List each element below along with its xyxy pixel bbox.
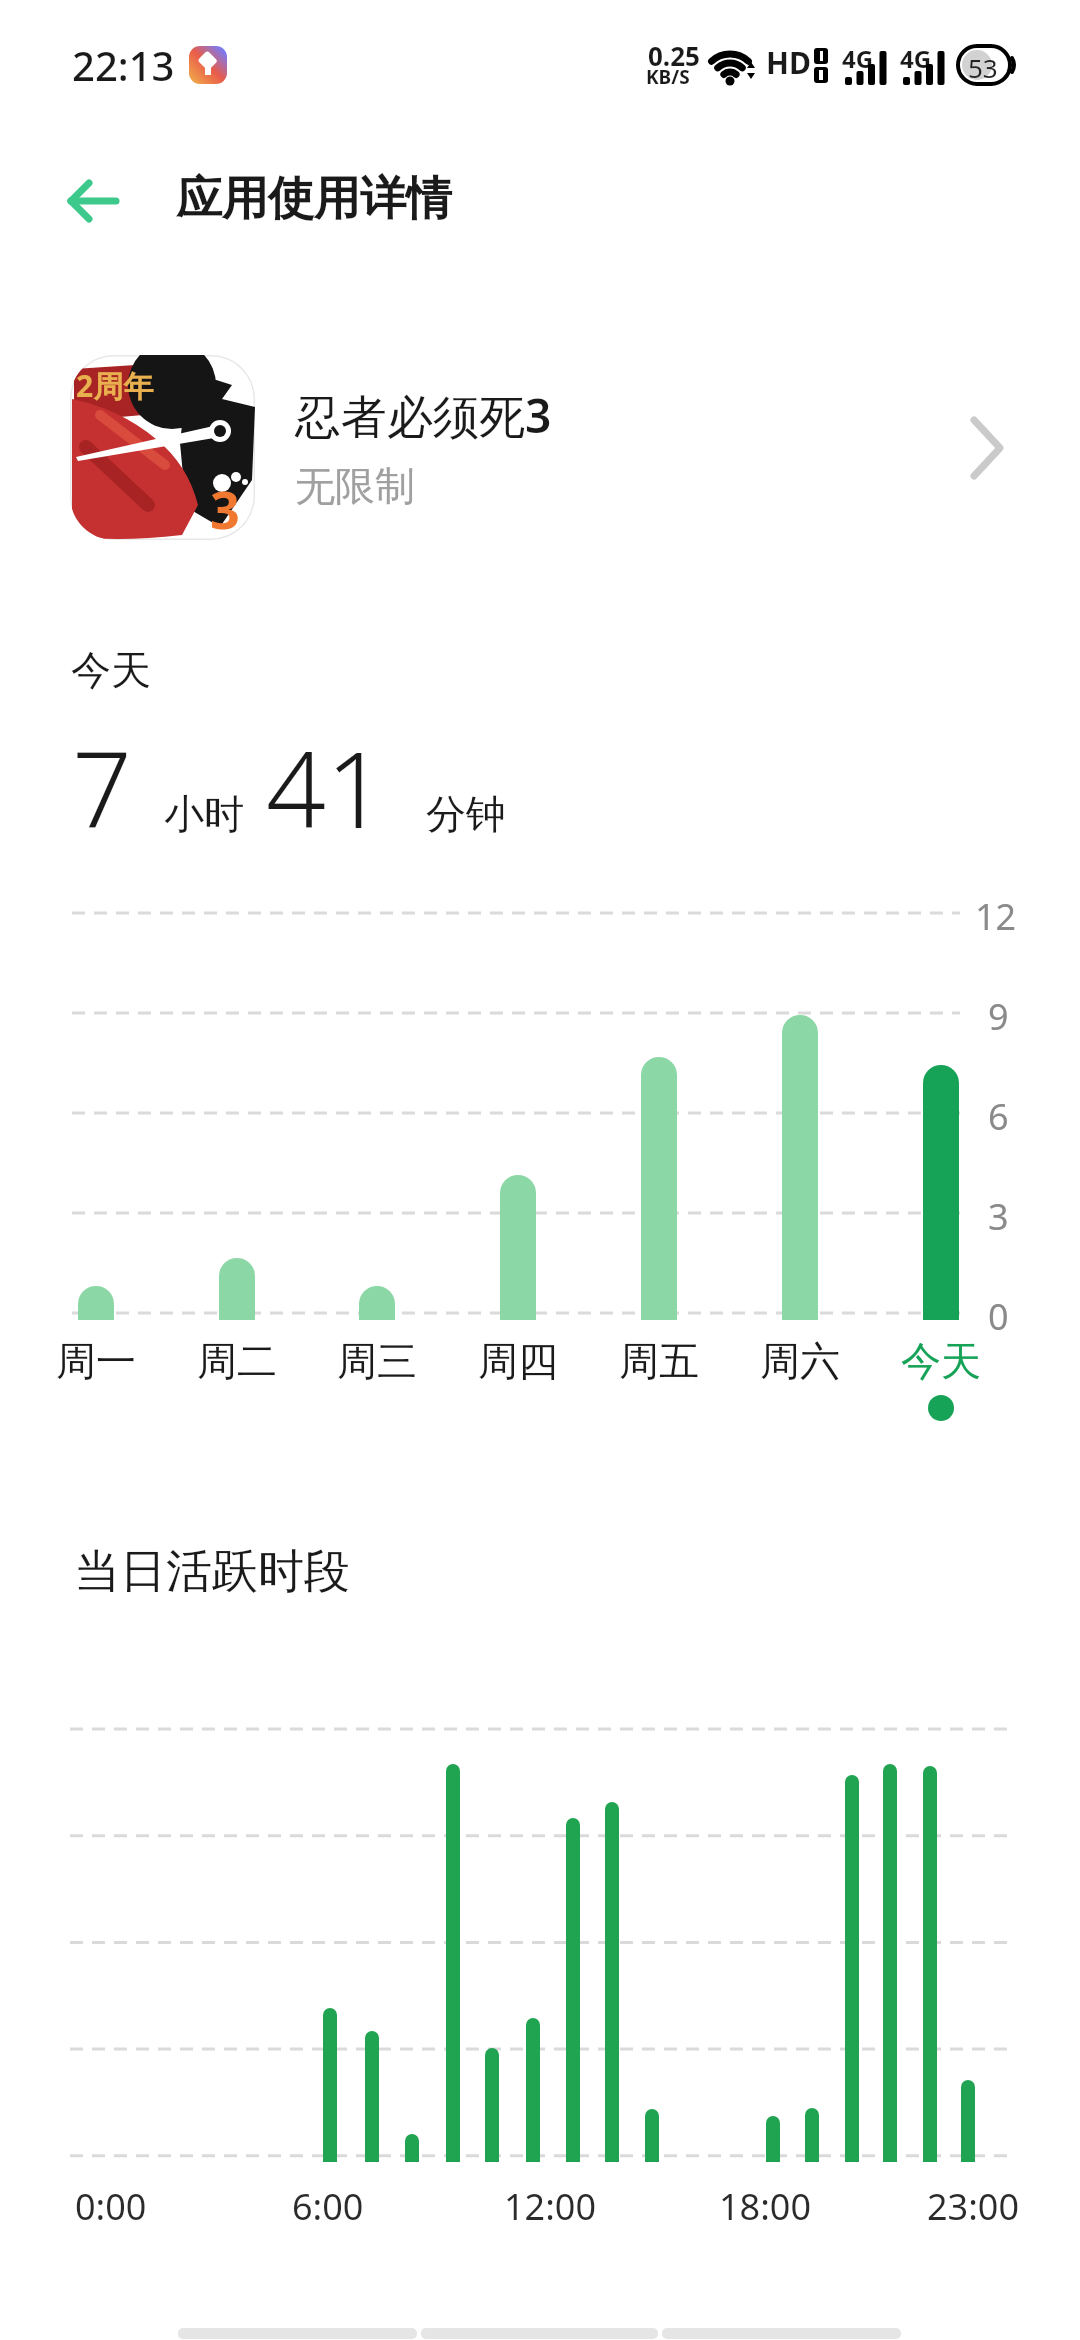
button[interactable]: 2周年 xyxy=(70,355,1010,540)
staticText: 周六 xyxy=(760,1336,840,1386)
staticText: 3 xyxy=(210,473,240,540)
staticText: 当日活跃时段 xyxy=(74,1543,350,1601)
staticText: 今天 xyxy=(901,1336,981,1386)
staticText: 周一 xyxy=(56,1336,136,1386)
staticText: 18:00 xyxy=(719,2182,812,2231)
staticText: 应用使用详情 xyxy=(176,170,452,228)
staticText: 6:00 xyxy=(292,2182,364,2231)
staticText: 今天 xyxy=(71,645,151,695)
staticText: 12:00 xyxy=(504,2182,597,2231)
staticText: 22:13 xyxy=(72,38,175,92)
staticText: 0.25 xyxy=(648,38,700,73)
staticText: 周四 xyxy=(478,1336,558,1386)
staticText: 41 xyxy=(266,716,386,859)
staticText: 无限制 xyxy=(295,461,415,511)
staticText: 12 xyxy=(975,892,1017,941)
staticText: 53 xyxy=(968,50,998,85)
staticText: 9 xyxy=(988,992,1009,1041)
staticText: 7 xyxy=(72,716,132,859)
staticText: 4G xyxy=(900,42,932,75)
staticText: KB/S xyxy=(646,64,690,90)
staticText: 忍者必须死3 xyxy=(295,384,552,447)
staticText: 2周年 xyxy=(76,365,154,406)
staticText: 23:00 xyxy=(927,2182,1020,2231)
staticText: 6 xyxy=(988,1092,1009,1141)
staticText: HD xyxy=(766,42,811,83)
staticText: 4G xyxy=(842,42,874,75)
staticText: 周二 xyxy=(197,1336,277,1386)
staticText: 分钟 xyxy=(426,789,506,839)
staticText: 3 xyxy=(988,1192,1009,1241)
staticText: 0:00 xyxy=(75,2182,147,2231)
staticText: 小时 xyxy=(164,789,244,839)
staticText: 0 xyxy=(988,1292,1009,1341)
staticText: 周三 xyxy=(337,1336,417,1386)
button[interactable] xyxy=(66,178,120,224)
staticText: 周五 xyxy=(619,1336,699,1386)
